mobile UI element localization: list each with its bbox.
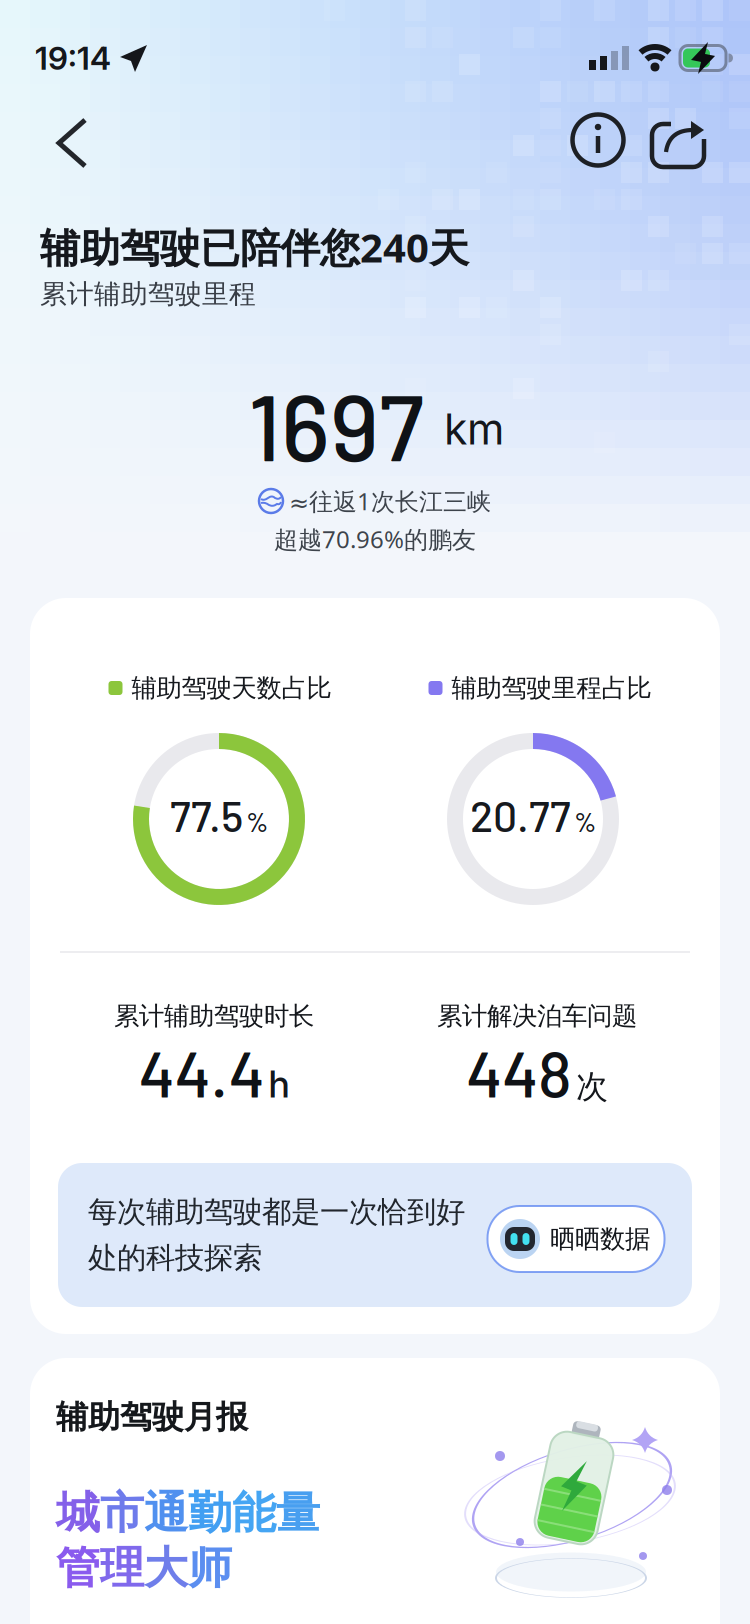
- staticText: 能: [232, 1486, 276, 1540]
- staticText: 每次辅助驾驶都是一次恰到好: [88, 1194, 465, 1230]
- staticText: %: [246, 805, 268, 837]
- button[interactable]: Back: [0, 0, 750, 1624]
- button[interactable]: Info: [0, 0, 750, 1624]
- staticText: 晒晒数据: [550, 1223, 650, 1254]
- staticText: 448: [466, 1034, 572, 1110]
- staticText: 理: [100, 1541, 144, 1595]
- staticText: 市: [100, 1486, 144, 1540]
- staticText: 大: [144, 1541, 188, 1595]
- staticText: 44.4: [138, 1034, 264, 1110]
- staticText: 累计辅助驾驶里程: [40, 278, 256, 310]
- button[interactable]: 晒晒数据: [487, 1206, 664, 1272]
- staticText: 辅助驾驶已陪伴您240天: [40, 220, 469, 273]
- staticText: 勤: [188, 1486, 232, 1540]
- staticText: 1697: [248, 368, 424, 480]
- button[interactable]: Share: [0, 0, 750, 1624]
- staticText: 城: [56, 1486, 100, 1540]
- staticText: 辅助驾驶里程占比: [451, 672, 651, 703]
- staticText: 次: [576, 1067, 608, 1107]
- staticText: 77.5: [170, 789, 243, 841]
- staticText: 19:14: [35, 39, 111, 77]
- staticText: 辅助驾驶月报: [56, 1397, 248, 1437]
- staticText: 20.77: [470, 789, 571, 841]
- staticText: 辅助驾驶天数占比: [131, 672, 331, 703]
- staticText: h: [268, 1061, 289, 1107]
- staticText: 处的科技探索: [88, 1240, 262, 1276]
- staticText: 通: [144, 1486, 188, 1540]
- staticText: 累计解决泊车问题: [437, 1000, 637, 1031]
- staticText: %: [574, 805, 596, 837]
- staticText: 超越70.96%的鹏友: [274, 523, 476, 555]
- staticText: 量: [276, 1486, 320, 1540]
- staticText: km: [444, 403, 504, 455]
- staticText: 师: [188, 1541, 232, 1595]
- staticText: 累计辅助驾驶时长: [114, 1000, 314, 1031]
- staticText: ≈往返1次长江三峡: [289, 485, 491, 517]
- staticText: 管: [56, 1541, 100, 1595]
